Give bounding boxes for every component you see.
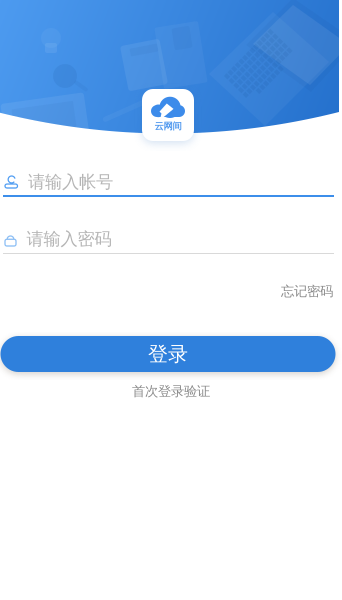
staticText: 首次登录验证 [132, 383, 210, 399]
staticText: 请输入帐号 [28, 171, 113, 193]
staticText: 登录 [148, 342, 188, 366]
button[interactable]: 登录 [0, 336, 335, 372]
button[interactable]: 忘记密码 [275, 276, 339, 306]
staticText: 云网间 [154, 120, 181, 132]
button[interactable]: 首次登录验证 [126, 377, 216, 405]
staticText: 请输入密码 [26, 228, 111, 250]
staticText: 忘记密码 [281, 283, 333, 299]
